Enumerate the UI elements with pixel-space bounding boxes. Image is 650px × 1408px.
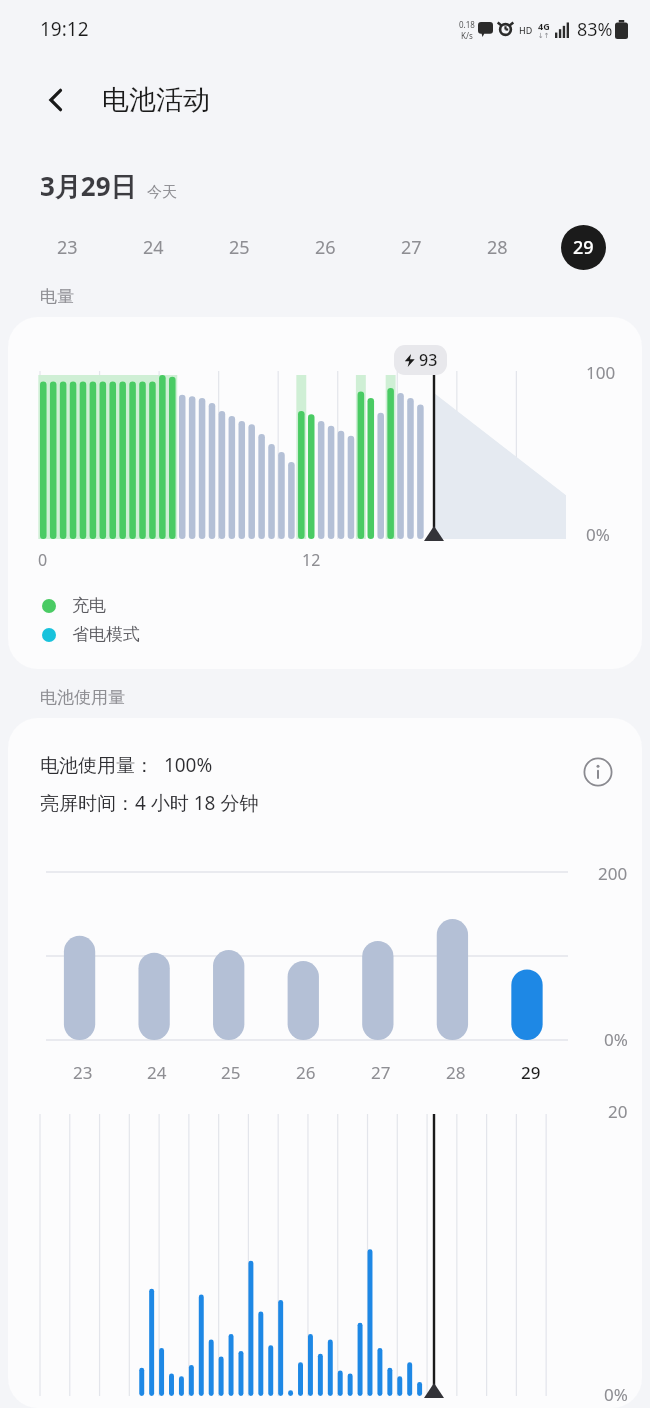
staticText: 亮屏时间：4 小时 18 分钟 [40, 790, 259, 816]
staticText: 0.18 [459, 19, 475, 30]
staticText: 27 [371, 1061, 391, 1084]
staticText: 电池使用量： 100% [40, 752, 213, 778]
staticText: HD [519, 24, 533, 36]
staticText: 28 [446, 1061, 466, 1084]
staticText: 3月29日 [40, 168, 137, 204]
staticText: 充电 [72, 595, 106, 616]
staticText: 28 [487, 235, 508, 260]
staticText: 26 [296, 1061, 316, 1084]
staticText: 26 [315, 235, 336, 260]
staticText: 24 [147, 1061, 167, 1084]
staticText: 200 [598, 862, 628, 885]
staticText: 25 [221, 1061, 241, 1084]
button[interactable]: 25 [196, 222, 282, 272]
button[interactable]: Info [578, 752, 618, 792]
button[interactable]: 充电 [42, 595, 106, 616]
staticText: 0% [604, 1028, 628, 1051]
staticText: 今天 [147, 183, 177, 202]
staticText: 24 [143, 235, 164, 260]
staticText: 电量 [40, 286, 74, 307]
staticText: 0% [586, 523, 610, 546]
staticText: 12 [302, 549, 321, 571]
staticText: 27 [401, 235, 422, 260]
staticText: 电池活动 [102, 83, 210, 117]
button[interactable]: 24 [110, 222, 196, 272]
button[interactable]: 100 [8, 317, 642, 669]
staticText: K/s [461, 30, 473, 41]
staticText: 电池使用量 [40, 687, 125, 708]
staticText: 100 [586, 361, 616, 384]
button[interactable]: 26 [282, 222, 368, 272]
staticText: 29 [521, 1061, 541, 1084]
button[interactable]: 省电模式 [42, 624, 140, 645]
staticText: 93 [419, 349, 438, 371]
button[interactable]: 23 [24, 222, 110, 272]
staticText: 4G [538, 20, 550, 32]
staticText: 83% [577, 17, 613, 42]
button[interactable]: 27 [368, 222, 454, 272]
staticText: 29 [573, 235, 594, 260]
staticText: 25 [229, 235, 250, 260]
staticText: 23 [57, 235, 78, 260]
staticText: ↓↑ [538, 32, 550, 40]
staticText: 20 [608, 1100, 628, 1123]
staticText: 23 [73, 1061, 93, 1084]
button[interactable]: 29 [540, 222, 626, 272]
staticText: 0% [604, 1383, 628, 1406]
staticText: 0 [38, 549, 48, 571]
staticText: 省电模式 [72, 624, 140, 645]
button[interactable]: Back [34, 77, 80, 123]
button[interactable]: 28 [454, 222, 540, 272]
staticText: 19:12 [40, 16, 89, 42]
